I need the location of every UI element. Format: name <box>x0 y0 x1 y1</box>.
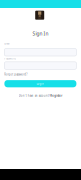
staticText: Email <box>4 42 10 45</box>
staticText: Forgot password? <box>4 73 27 76</box>
button[interactable]: Login <box>4 80 76 87</box>
staticText: Password <box>4 57 16 60</box>
staticText: Register <box>50 94 62 97</box>
button[interactable]: Register <box>50 94 62 97</box>
staticText: Sign In <box>32 30 48 37</box>
staticText: Don't have an account? <box>19 94 50 97</box>
button[interactable]: Forgot password? <box>4 73 27 76</box>
staticText: Login <box>36 82 44 85</box>
